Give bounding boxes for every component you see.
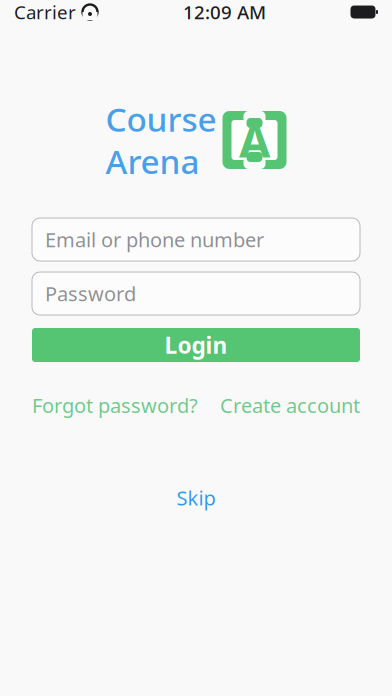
button[interactable]: Login: [32, 328, 360, 362]
button[interactable]: Password: [32, 272, 360, 315]
staticText: Email or phone number: [45, 226, 264, 253]
staticText: Login: [164, 330, 227, 360]
staticText: Course: [105, 97, 216, 141]
staticText: 12:09 AM: [183, 0, 266, 24]
button[interactable]: Create account: [220, 392, 360, 419]
button[interactable]: Email or phone number: [32, 218, 360, 261]
staticText: Forgot password?: [32, 392, 198, 419]
staticText: Create account: [220, 392, 360, 419]
button[interactable]: Skip: [162, 479, 229, 517]
staticText: Carrier: [14, 0, 76, 24]
staticText: Skip: [176, 485, 215, 511]
staticText: A: [239, 110, 270, 170]
button[interactable]: Forgot password?: [32, 392, 198, 419]
staticText: Password: [45, 280, 136, 307]
staticText: Arena: [105, 139, 199, 183]
